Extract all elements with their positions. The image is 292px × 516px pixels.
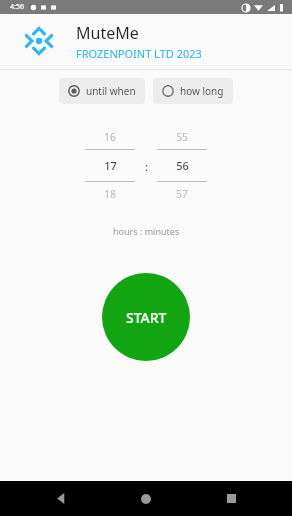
staticText: 57 — [176, 187, 188, 201]
button[interactable]: 16 — [85, 130, 135, 201]
button[interactable]: until when — [59, 78, 145, 104]
button[interactable]: Home — [122, 481, 170, 516]
staticText: how long — [180, 84, 224, 98]
button[interactable]: Recent apps — [207, 481, 255, 516]
staticText: : — [145, 159, 148, 174]
staticText: 56 — [176, 158, 189, 173]
staticText: 55 — [176, 130, 188, 144]
staticText: 16 — [104, 130, 116, 144]
button[interactable]: START — [102, 273, 190, 361]
staticText: hours : minutes — [113, 225, 180, 237]
button[interactable]: 55 — [157, 130, 207, 201]
staticText: 17 — [104, 158, 117, 173]
staticText: START — [126, 308, 167, 327]
staticText: MuteMe — [76, 22, 139, 44]
button[interactable]: Back — [37, 481, 85, 516]
staticText: FROZENPOINT LTD 2023 — [76, 46, 202, 61]
staticText: until when — [86, 84, 136, 98]
staticText: 18 — [104, 187, 116, 201]
button[interactable]: how long — [153, 78, 233, 104]
staticText: 4:56 — [10, 2, 24, 12]
